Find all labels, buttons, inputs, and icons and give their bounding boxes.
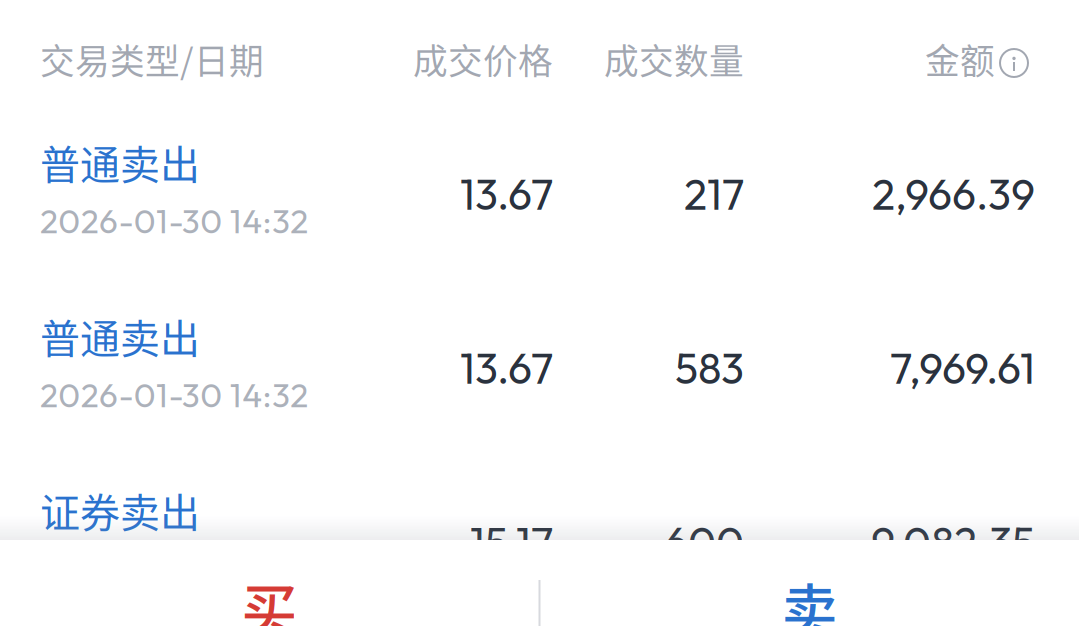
- staticText: 2,966.39: [872, 167, 1035, 221]
- staticText: 13.67: [460, 167, 553, 221]
- staticText: 2026-01-30 14:32: [40, 200, 308, 242]
- staticText: 普通卖出: [40, 133, 200, 191]
- staticText: 普通卖出: [40, 307, 200, 365]
- staticText: 成交价格: [413, 34, 553, 84]
- staticText: 583: [675, 341, 744, 395]
- staticText: 600: [664, 515, 744, 569]
- staticText: 成交数量: [604, 34, 744, 84]
- staticText: 9,082.35: [871, 515, 1035, 569]
- staticText: 7,969.61: [890, 341, 1035, 395]
- staticText: 卖: [782, 565, 838, 626]
- button[interactable]: 证券卖出: [0, 479, 1079, 626]
- staticText: 买: [241, 565, 297, 626]
- button[interactable]: 普通卖出: [0, 131, 1079, 305]
- staticText: 15.17: [470, 515, 553, 569]
- staticText: 217: [684, 167, 744, 221]
- staticText: 交易类型/日期: [40, 34, 264, 84]
- button[interactable]: 卖: [540, 540, 1079, 626]
- staticText: 2026-01-30 14:32: [40, 374, 308, 416]
- staticText: 13.67: [460, 341, 553, 395]
- button[interactable]: 买: [0, 540, 538, 626]
- staticText: 金额: [925, 34, 995, 84]
- button[interactable]: 普通卖出: [0, 305, 1079, 479]
- button[interactable]: 金额说明: [831, 41, 1031, 85]
- staticText: 证券卖出: [40, 481, 200, 539]
- staticText: 2026-01-30 14:32: [40, 548, 308, 590]
